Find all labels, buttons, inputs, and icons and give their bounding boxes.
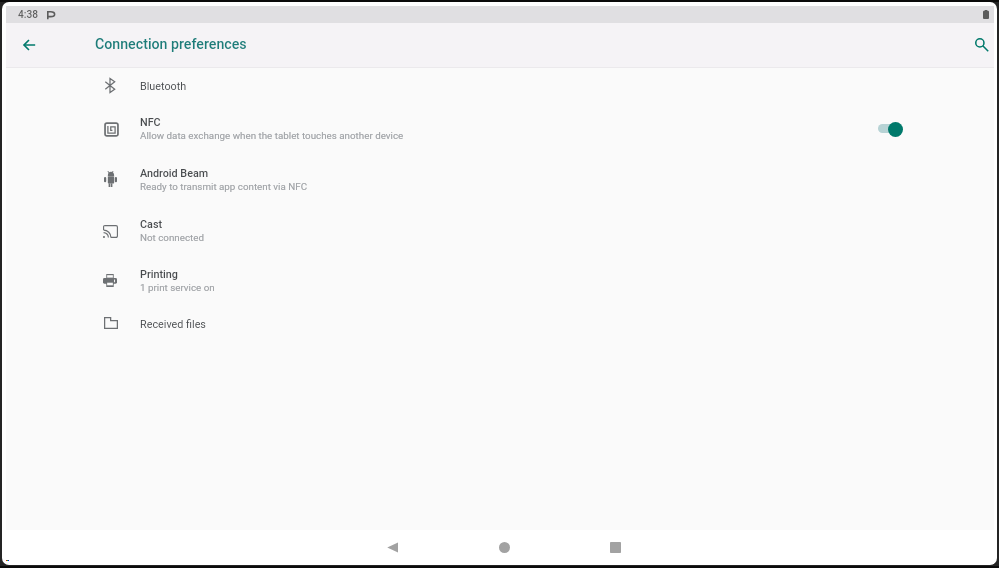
button[interactable]: Recent apps <box>598 530 632 564</box>
button[interactable]: NFC <box>6 103 994 154</box>
staticText: Received files <box>140 318 206 331</box>
staticText: Android Beam <box>140 167 209 180</box>
button[interactable]: Printing <box>6 255 994 306</box>
staticText: Printing <box>140 268 178 281</box>
button[interactable]: Cast <box>6 205 994 256</box>
button[interactable]: Android Beam <box>6 154 994 205</box>
button[interactable]: Bluetooth <box>6 68 994 104</box>
button[interactable]: Received files <box>6 306 994 342</box>
staticText: Not connected <box>140 232 204 243</box>
button[interactable]: Navigate up <box>11 27 47 63</box>
staticText: Ready to transmit app content via NFC <box>140 181 308 192</box>
staticText: Connection preferences <box>95 36 247 53</box>
staticText: NFC <box>140 116 161 129</box>
staticText: Allow data exchange when the tablet touc… <box>140 130 404 141</box>
staticText: Cast <box>140 218 163 231</box>
staticText: 1 print service on <box>140 282 215 293</box>
button[interactable]: Back <box>375 530 409 564</box>
button[interactable]: Home <box>487 530 521 564</box>
button[interactable]: Search <box>965 28 999 62</box>
staticText: 4:38 <box>18 9 39 21</box>
staticText: Bluetooth <box>140 80 187 93</box>
button[interactable]: NFC on <box>872 114 908 142</box>
